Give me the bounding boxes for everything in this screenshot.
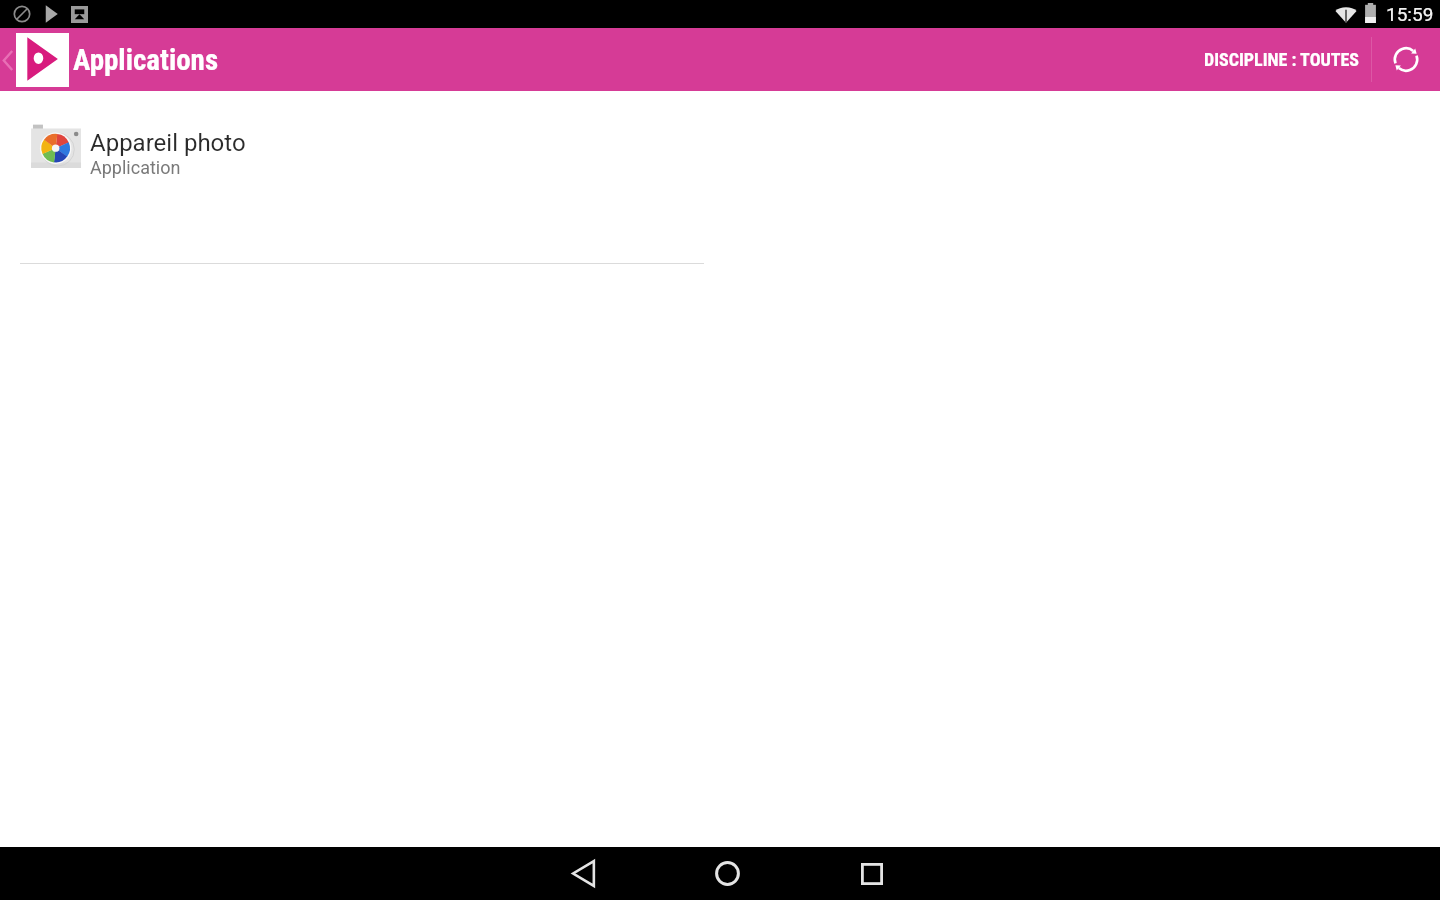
staticText: Appareil photo [90, 129, 246, 157]
button[interactable]: DISCIPLINE : TOUTES [1190, 28, 1371, 91]
button[interactable]: Home [675, 847, 780, 900]
staticText: DISCIPLINE : TOUTES [1204, 49, 1360, 70]
staticText: 15:59 [1386, 3, 1434, 25]
staticText: Application [90, 157, 181, 178]
button[interactable]: Back [531, 847, 636, 900]
button[interactable]: App logo [16, 33, 69, 87]
button[interactable]: Appareil photo [0, 91, 1440, 187]
staticText: Applications [73, 43, 219, 77]
button[interactable]: Recent apps [819, 847, 924, 900]
button[interactable]: Back [1, 42, 17, 78]
button[interactable]: Refresh [1372, 28, 1440, 91]
